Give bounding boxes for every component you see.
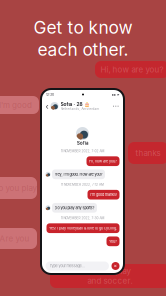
staticText: I'm good thanks! <box>90 192 117 197</box>
staticText: Yes! I play volleyball & love to go cycl… <box>49 226 117 230</box>
staticText: ⋯ <box>112 102 119 110</box>
staticText: 11 NOVEMBER 2022, 7:02 AM <box>60 149 104 153</box>
staticText: Hi, how are you? <box>89 159 117 163</box>
staticText: Are you <box>0 234 29 243</box>
staticText: ▮▮ ▰ <box>112 93 119 96</box>
staticText: ‹ <box>45 101 48 111</box>
staticText: Sofia · 28 🎂 <box>60 101 89 107</box>
staticText: Do you play any sports? <box>54 206 94 210</box>
staticText: Do you play <box>0 183 36 193</box>
staticText: Hi, how are you? <box>100 65 163 74</box>
staticText: each other. <box>37 39 128 60</box>
staticText: ✕ <box>113 263 117 268</box>
staticText: love to play and soccer. <box>87 266 132 286</box>
staticText: 11 NOVEMBER 2022, 7:30 AM <box>60 216 104 220</box>
staticText: 12:30 <box>46 92 54 97</box>
staticText: Get to know <box>33 17 132 38</box>
button[interactable]: Send message <box>111 262 119 270</box>
button[interactable]: ‹ <box>42 99 123 113</box>
staticText: 11 NOVEMBER 2022, 7:12 AM <box>61 183 104 186</box>
staticText: Hey, I'm good. How are you? <box>54 172 102 177</box>
staticText: You? <box>109 239 117 244</box>
staticText: thanks <box>135 148 160 158</box>
staticText: I'm good <box>0 100 32 110</box>
staticText: Sofia <box>77 140 88 146</box>
staticText: Netherlands, Amsterdam <box>60 107 99 111</box>
staticText: Type your message… <box>49 264 84 268</box>
